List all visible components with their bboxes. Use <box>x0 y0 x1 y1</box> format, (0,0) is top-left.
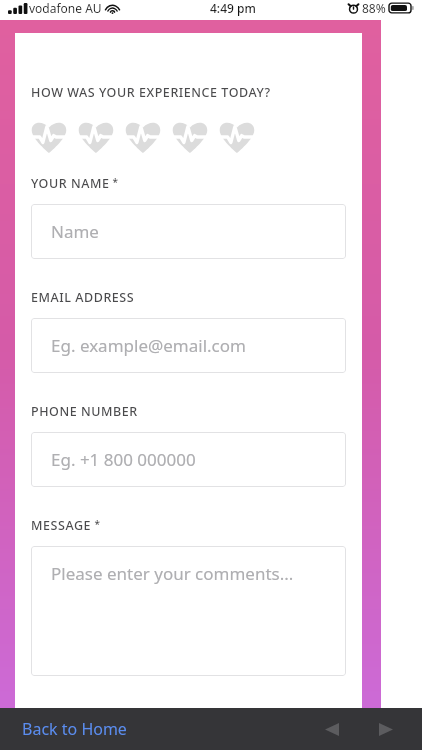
staticText: PHONE NUMBER <box>31 403 138 420</box>
staticText: YOUR NAME <box>31 175 110 192</box>
button[interactable]: Rating 1 <box>31 120 67 154</box>
staticText: Eg. example@email.com <box>51 334 246 357</box>
button[interactable]: Name <box>31 204 346 259</box>
staticText: vodafone AU <box>29 0 102 16</box>
staticText: * <box>110 175 119 189</box>
staticText: HOW WAS YOUR EXPERIENCE TODAY? <box>31 84 271 101</box>
staticText: EMAIL ADDRESS <box>31 289 135 306</box>
button[interactable]: Rating 2 <box>78 120 114 154</box>
staticText: Name <box>51 220 99 243</box>
staticText: 88% <box>362 0 386 16</box>
button[interactable]: Eg. example@email.com <box>31 318 346 373</box>
staticText: Back to Home <box>22 718 127 740</box>
button[interactable]: Rating 4 <box>172 120 208 154</box>
button[interactable]: Eg. +1 800 000000 <box>31 432 346 487</box>
staticText: MESSAGE <box>31 517 92 534</box>
staticText: 4:49 pm <box>210 0 256 16</box>
staticText: Eg. +1 800 000000 <box>51 448 196 471</box>
staticText: Please enter your comments... <box>51 562 294 585</box>
button[interactable]: Rating 5 <box>219 120 255 154</box>
button[interactable]: Please enter your comments... <box>31 546 346 676</box>
button[interactable]: Next <box>368 711 404 747</box>
button[interactable]: Previous <box>314 711 350 747</box>
staticText: * <box>92 517 101 531</box>
button[interactable]: Back to Home <box>10 710 139 748</box>
button[interactable]: Rating 3 <box>125 120 161 154</box>
